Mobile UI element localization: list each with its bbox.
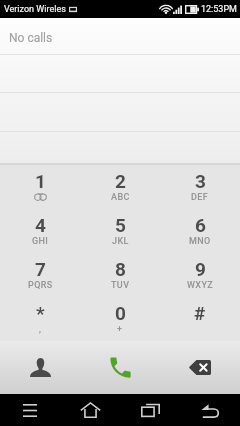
button[interactable]: Contacts [0,341,80,394]
button[interactable]: Home [60,394,120,426]
staticText: 9 [195,258,206,280]
button[interactable]: 7 [0,253,80,297]
button[interactable]: # [160,297,240,341]
staticText: 8 [115,258,126,280]
staticText: 0 [115,302,126,324]
staticText: DEF [191,192,209,203]
button[interactable]: Backspace [160,341,240,394]
staticText: 7 [35,258,46,280]
staticText: 6 [195,214,206,236]
staticText: ABC [111,192,130,203]
button[interactable]: 1 [0,165,80,209]
button[interactable]: 5 [80,209,160,253]
staticText: , [39,324,42,335]
staticText: JKL [112,236,129,247]
staticText: 1 [35,170,46,192]
button[interactable]: * [0,297,80,341]
staticText: 3 [195,170,206,192]
staticText: TUV [111,280,130,291]
button[interactable]: 3 [160,165,240,209]
staticText: 2 [115,170,126,192]
button[interactable]: 0 [80,297,160,341]
staticText: Verizon Wireles [4,4,66,15]
staticText: GHI [32,236,49,247]
staticText: WXYZ [187,280,214,291]
button[interactable]: 9 [160,253,240,297]
staticText: 5 [115,214,126,236]
button[interactable]: 4 [0,209,80,253]
button[interactable]: Recent apps [120,394,180,426]
staticText: 4 [35,214,46,236]
staticText: * [36,302,45,324]
button[interactable]: Call [80,341,160,394]
staticText: + [117,324,123,335]
staticText: No calls [9,31,53,45]
button[interactable]: Back [180,394,240,426]
staticText: PQRS [28,280,53,291]
staticText: MNO [189,236,211,247]
button[interactable]: 8 [80,253,160,297]
button[interactable]: 2 [80,165,160,209]
button[interactable]: 6 [160,209,240,253]
staticText: 12:53PM [201,4,237,15]
button[interactable]: Menu [0,394,60,426]
staticText: # [194,302,206,324]
